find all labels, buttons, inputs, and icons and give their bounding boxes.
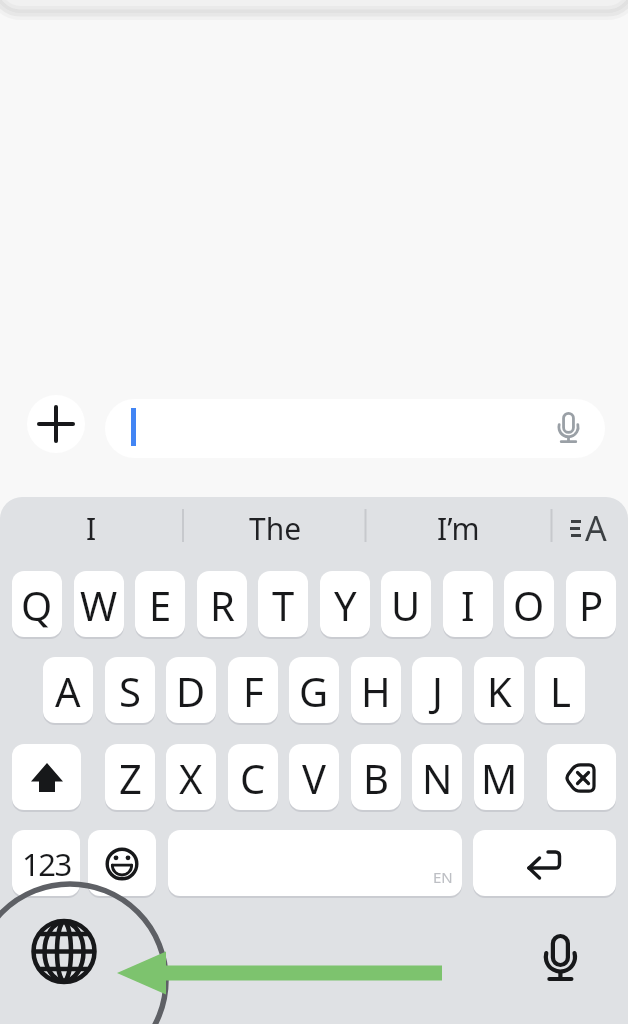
button[interactable]: I — [0, 500, 183, 556]
button[interactable]: S — [105, 657, 155, 725]
staticText: P — [579, 578, 604, 632]
button[interactable]: N — [412, 744, 462, 812]
button[interactable]: Q — [12, 571, 62, 639]
button[interactable] — [105, 399, 605, 458]
button[interactable] — [547, 744, 616, 812]
staticText: D — [176, 664, 206, 718]
button[interactable]: D — [166, 657, 216, 725]
staticText: N — [422, 751, 453, 805]
staticText: M — [481, 751, 518, 805]
staticText: K — [487, 664, 512, 718]
staticText: I — [86, 508, 97, 549]
staticText: V — [302, 751, 326, 805]
button[interactable] — [22, 910, 106, 994]
button[interactable]: L — [535, 657, 585, 725]
button[interactable] — [27, 395, 85, 453]
button[interactable]: F — [228, 657, 278, 725]
button[interactable]: E — [135, 571, 185, 639]
button[interactable]: I — [443, 571, 493, 639]
button[interactable] — [88, 830, 156, 898]
staticText: A — [55, 664, 81, 718]
staticText: The — [249, 508, 302, 549]
button[interactable] — [520, 915, 600, 995]
staticText: E — [149, 578, 172, 632]
button[interactable]: A — [43, 657, 93, 725]
staticText: W — [80, 578, 118, 632]
staticText: A — [585, 505, 607, 551]
staticText: S — [119, 664, 141, 718]
button[interactable]: U — [381, 571, 431, 639]
button[interactable]: W — [74, 571, 124, 639]
button[interactable]: The — [184, 500, 366, 556]
button[interactable] — [473, 830, 616, 898]
staticText: H — [361, 664, 391, 718]
staticText: Q — [21, 578, 53, 632]
staticText: J — [432, 664, 443, 718]
staticText: U — [391, 578, 421, 632]
button[interactable]: 123 — [12, 830, 80, 898]
button[interactable]: A — [556, 504, 620, 552]
staticText: I — [461, 578, 475, 632]
button[interactable]: O — [504, 571, 554, 639]
staticText: EN — [433, 867, 453, 887]
button[interactable]: R — [197, 571, 247, 639]
staticText: Y — [334, 578, 357, 632]
button[interactable]: I’m — [366, 500, 550, 556]
button[interactable]: T — [258, 571, 308, 639]
button[interactable]: P — [566, 571, 616, 639]
button[interactable]: Z — [105, 744, 155, 812]
staticText: L — [550, 664, 571, 718]
button[interactable]: C — [228, 744, 278, 812]
staticText: O — [513, 578, 545, 632]
button[interactable]: V — [289, 744, 339, 812]
button[interactable]: H — [351, 657, 401, 725]
button[interactable]: EN — [168, 830, 462, 898]
staticText: 123 — [22, 843, 71, 885]
staticText: X — [179, 751, 203, 805]
staticText: Z — [119, 751, 142, 805]
button[interactable] — [12, 744, 81, 812]
staticText: F — [243, 664, 264, 718]
staticText: I’m — [437, 508, 480, 549]
staticText: B — [363, 751, 389, 805]
staticText: R — [210, 578, 235, 632]
staticText: C — [240, 751, 266, 805]
button[interactable]: X — [166, 744, 216, 812]
staticText: T — [272, 578, 295, 632]
staticText: G — [299, 664, 329, 718]
button[interactable]: Y — [320, 571, 370, 639]
button[interactable]: B — [351, 744, 401, 812]
button[interactable]: G — [289, 657, 339, 725]
button[interactable]: M — [474, 744, 524, 812]
button[interactable]: K — [474, 657, 524, 725]
button[interactable]: J — [412, 657, 462, 725]
